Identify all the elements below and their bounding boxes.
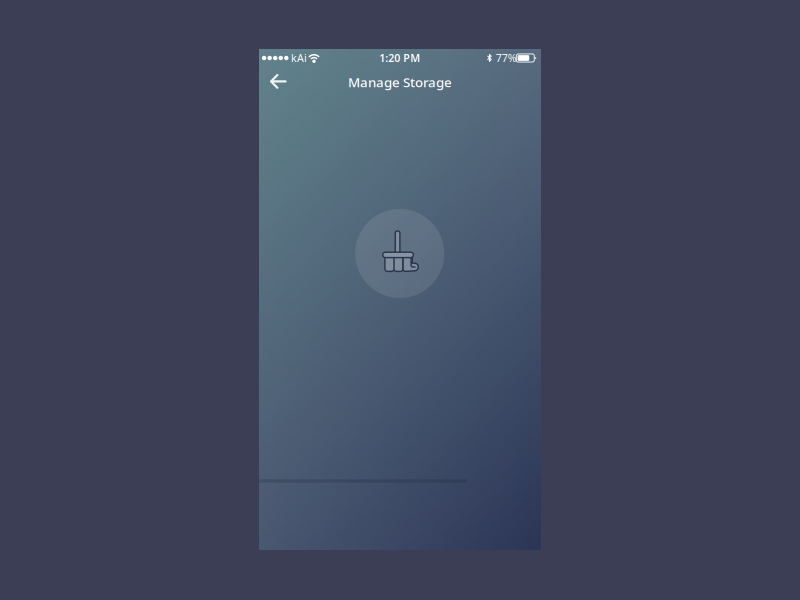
staticText: kAi (291, 51, 307, 65)
staticText: 77% (496, 51, 517, 65)
staticText: Manage Storage (348, 73, 452, 91)
staticText: 1:20 PM (379, 51, 420, 65)
button[interactable]: Back (261, 65, 295, 97)
